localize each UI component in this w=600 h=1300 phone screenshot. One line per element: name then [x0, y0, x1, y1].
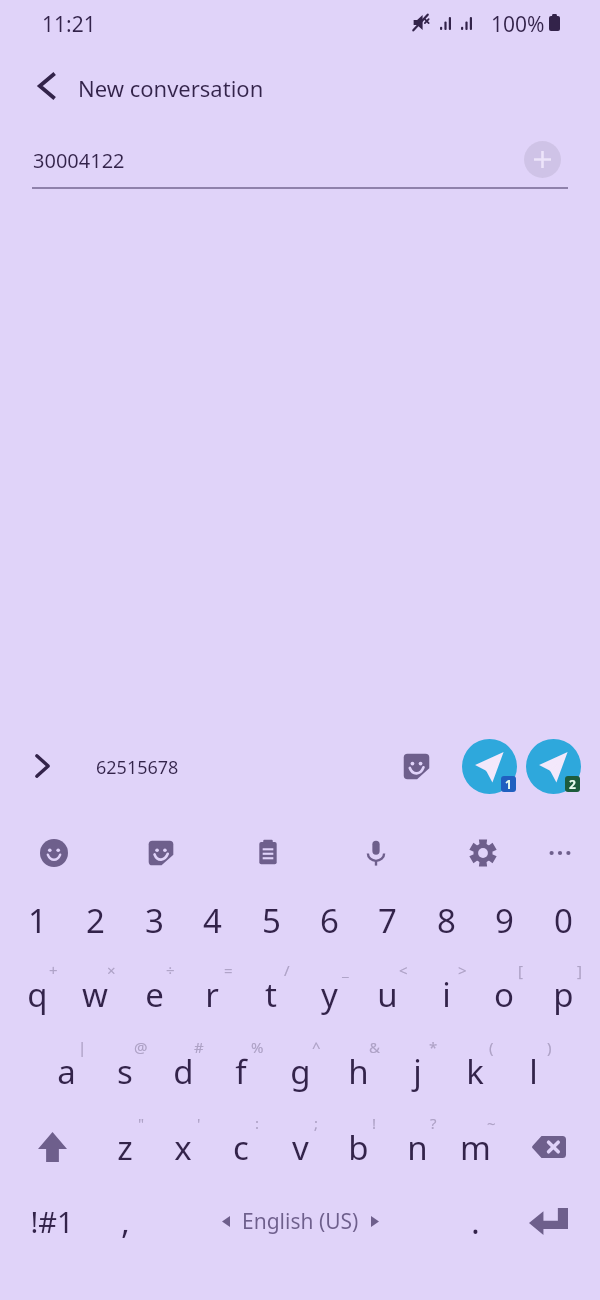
staticText: a [57, 1049, 76, 1094]
staticText: 5 [262, 898, 281, 943]
button[interactable]: ] [534, 957, 592, 1031]
staticText: New conversation [78, 73, 264, 103]
staticText: 0 [554, 898, 573, 943]
staticText: j [413, 1049, 422, 1094]
button[interactable]: Space, English (US) [154, 1184, 446, 1258]
button[interactable]: Show more options [22, 746, 62, 786]
button[interactable]: Clipboard [248, 833, 288, 873]
staticText: ~ [487, 1113, 496, 1133]
button[interactable]: _ [300, 957, 358, 1031]
button[interactable]: : [212, 1110, 270, 1184]
button[interactable]: [ [475, 957, 533, 1031]
staticText: u [377, 972, 398, 1017]
button[interactable]: @ [96, 1034, 154, 1108]
button[interactable]: = [183, 957, 241, 1031]
button[interactable]: 3 [125, 883, 183, 957]
staticText: ) [547, 1037, 552, 1057]
button[interactable]: ' [154, 1110, 212, 1184]
staticText: [ [518, 960, 523, 980]
button[interactable]: ( [446, 1034, 504, 1108]
button[interactable]: 6 [300, 883, 358, 957]
staticText: ] [577, 960, 582, 980]
button[interactable]: Voice input [356, 833, 396, 873]
button[interactable]: " [96, 1110, 154, 1184]
button[interactable]: ; [271, 1110, 329, 1184]
button[interactable]: Add recipient [524, 141, 561, 178]
staticText: 8 [437, 898, 456, 943]
button[interactable]: < [358, 957, 416, 1031]
staticText: 4 [203, 898, 222, 943]
staticText: 6 [320, 898, 339, 943]
button[interactable]: ) [504, 1034, 562, 1108]
staticText: 62515678 [96, 755, 179, 780]
staticText: 9 [495, 898, 514, 943]
staticText: 7 [378, 898, 397, 943]
button[interactable]: ? [388, 1110, 446, 1184]
staticText: 1 [505, 776, 512, 792]
button[interactable]: 1 [8, 883, 66, 957]
button[interactable]: & [329, 1034, 387, 1108]
staticText: w [82, 972, 108, 1017]
button[interactable]: . [446, 1184, 504, 1258]
button[interactable]: | [37, 1034, 95, 1108]
staticText: 2 [569, 776, 576, 792]
button[interactable]: 2 [66, 883, 124, 957]
staticText: n [407, 1125, 428, 1170]
button[interactable]: Backspace [504, 1110, 592, 1184]
button[interactable]: 5 [242, 883, 300, 957]
staticText: c [233, 1125, 249, 1170]
staticText: , [121, 1199, 130, 1244]
staticText: ( [489, 1037, 494, 1057]
staticText: ' [197, 1113, 201, 1133]
button[interactable]: * [388, 1034, 446, 1108]
staticText: / [284, 960, 290, 980]
button[interactable]: Enter [504, 1184, 592, 1258]
button[interactable]: 7 [358, 883, 416, 957]
staticText: !#1 [30, 1202, 74, 1241]
button[interactable]: Back [20, 60, 72, 112]
button[interactable]: + [8, 957, 66, 1031]
button[interactable]: Stickers [396, 746, 436, 786]
button[interactable]: More options [540, 833, 580, 873]
button[interactable]: # [154, 1034, 212, 1108]
button[interactable]: % [212, 1034, 270, 1108]
button[interactable]: Send with SIM 1 [462, 739, 517, 794]
button[interactable]: ~ [446, 1110, 504, 1184]
staticText: ! [372, 1113, 377, 1133]
button[interactable]: / [242, 957, 300, 1031]
staticText: | [78, 1037, 87, 1057]
button[interactable]: Stickers [147, 839, 175, 867]
button[interactable]: 9 [475, 883, 533, 957]
staticText: * [429, 1037, 438, 1057]
button[interactable]: 0 [534, 883, 592, 957]
button[interactable]: Keyboard settings [463, 833, 503, 873]
button[interactable]: ^ [271, 1034, 329, 1108]
button[interactable]: Emoji [34, 833, 74, 873]
staticText: & [369, 1037, 380, 1057]
button[interactable]: > [417, 957, 475, 1031]
staticText: x [174, 1125, 192, 1170]
button[interactable]: !#1 [23, 1184, 81, 1258]
button[interactable]: 8 [417, 883, 475, 957]
staticText: f [235, 1049, 247, 1094]
staticText: " [138, 1113, 145, 1133]
button[interactable]: ÷ [125, 957, 183, 1031]
button[interactable]: ! [329, 1110, 387, 1184]
staticText: × [107, 960, 116, 980]
staticText: : [255, 1113, 260, 1133]
button[interactable]: 4 [183, 883, 241, 957]
staticText: o [494, 972, 514, 1017]
button[interactable]: Shift [8, 1110, 96, 1184]
staticText: ÷ [166, 960, 175, 980]
staticText: # [194, 1037, 204, 1057]
button[interactable]: × [66, 957, 124, 1031]
staticText: p [553, 972, 574, 1017]
staticText: 11:21 [42, 10, 96, 39]
button[interactable]: Sound off [408, 9, 434, 35]
button[interactable]: , [96, 1184, 154, 1258]
staticText: g [290, 1049, 311, 1094]
staticText: l [529, 1049, 538, 1094]
staticText: d [173, 1049, 194, 1094]
button[interactable]: Send with SIM 2 [526, 739, 581, 794]
staticText: . [471, 1199, 480, 1244]
